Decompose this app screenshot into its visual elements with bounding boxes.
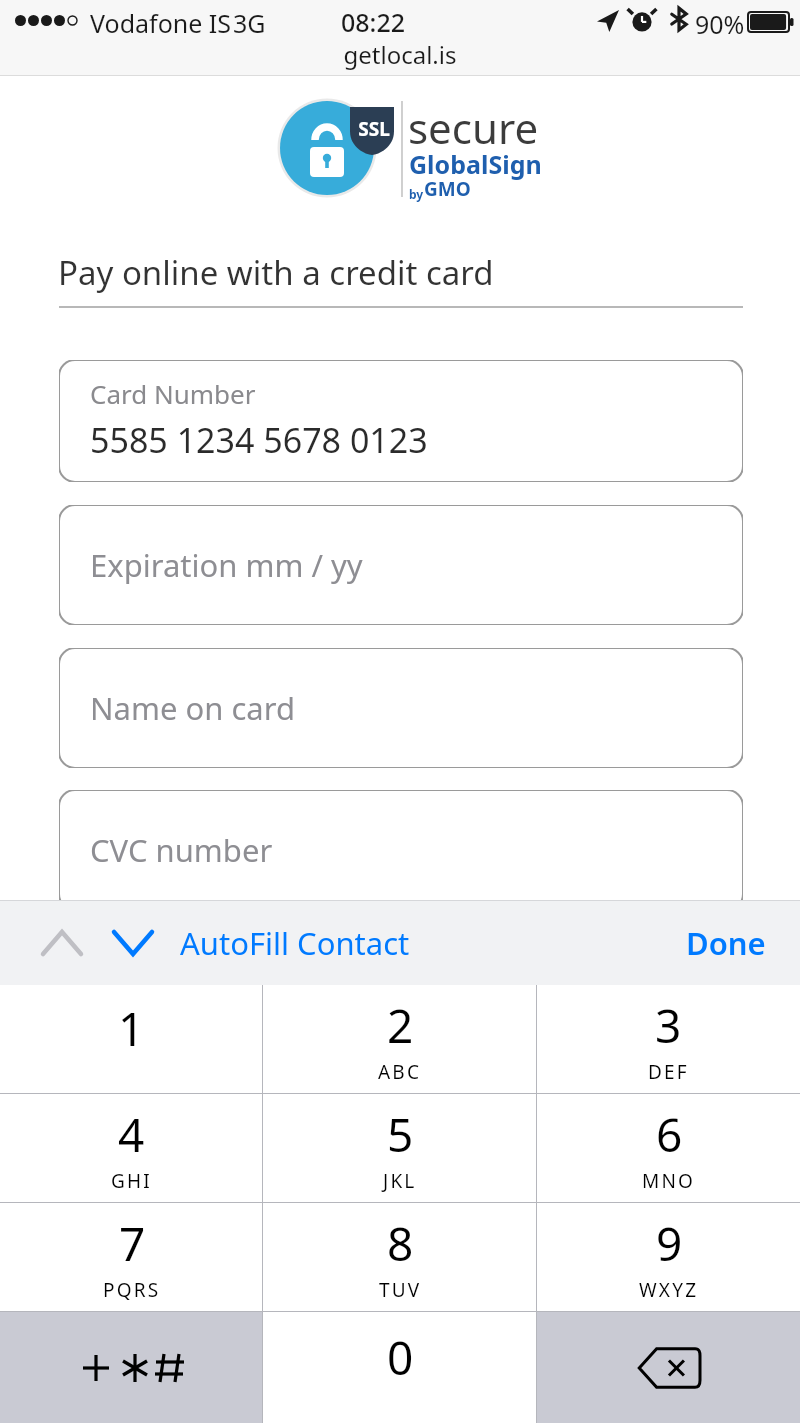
other: Alarm	[630, 8, 654, 32]
staticText: 9	[656, 1212, 683, 1275]
button[interactable]: 8	[263, 1203, 537, 1311]
staticText: Pay online with a credit card	[58, 250, 494, 295]
staticText: 5585 1234 5678 0123	[90, 417, 428, 463]
button[interactable]: Symbols	[0, 1312, 263, 1423]
staticText: SSL	[352, 116, 396, 142]
staticText: by	[409, 186, 424, 202]
button[interactable]: Previous field	[36, 900, 88, 985]
staticText: GHI	[111, 1168, 152, 1194]
button[interactable]: 1	[0, 985, 263, 1093]
staticText: 90%	[695, 7, 745, 41]
staticText: GMO	[424, 176, 471, 202]
staticText: 2	[387, 994, 414, 1057]
button[interactable]: Expiration mm / yy	[59, 505, 743, 625]
staticText: 7	[119, 1212, 146, 1275]
button[interactable]: 6	[537, 1094, 800, 1202]
button[interactable]: Name on card	[59, 648, 743, 768]
staticText: 08:22	[341, 5, 406, 39]
button[interactable]: 9	[537, 1203, 800, 1311]
button[interactable]: AutoFill Contact	[180, 900, 410, 985]
staticText: 0	[387, 1326, 414, 1389]
button[interactable]: 4	[0, 1094, 263, 1202]
staticText: 5	[387, 1103, 414, 1166]
staticText: 4	[118, 1103, 145, 1166]
button[interactable]: Card Number	[59, 360, 743, 482]
staticText: Vodafone IS	[90, 6, 232, 40]
button[interactable]: CVC number	[59, 790, 743, 910]
button[interactable]: 0	[263, 1312, 537, 1423]
staticText: Name on card	[90, 687, 295, 729]
staticText: CVC number	[90, 829, 273, 871]
staticText: GlobalSign	[409, 147, 542, 181]
staticText: Done	[686, 922, 766, 964]
staticText: MNO	[642, 1168, 696, 1194]
staticText: TUV	[379, 1277, 422, 1303]
other: Bluetooth	[667, 7, 691, 31]
staticText: ABC	[378, 1059, 422, 1085]
staticText: AutoFill Contact	[180, 922, 410, 964]
staticText: JKL	[383, 1168, 417, 1194]
staticText: getlocal.is	[0, 38, 800, 71]
other: Location	[597, 10, 619, 32]
button[interactable]: 2	[263, 985, 537, 1093]
button[interactable]: 3	[537, 985, 800, 1093]
button[interactable]: Backspace	[537, 1312, 800, 1423]
button[interactable]: 7	[0, 1203, 263, 1311]
staticText: 6	[656, 1103, 683, 1166]
staticText: 1	[118, 997, 145, 1060]
staticText: 8	[387, 1212, 414, 1275]
staticText: 3	[655, 994, 682, 1057]
button[interactable]: 5	[263, 1094, 537, 1202]
staticText: PQRS	[103, 1277, 161, 1303]
button[interactable]: Next field	[107, 900, 159, 985]
staticText: WXYZ	[639, 1277, 699, 1303]
staticText: Card Number	[90, 376, 256, 411]
button[interactable]: Done	[686, 900, 766, 985]
staticText: secure	[408, 99, 539, 156]
staticText: DEF	[648, 1059, 689, 1085]
staticText: Expiration mm / yy	[90, 544, 363, 586]
staticText: 3G	[233, 6, 266, 40]
